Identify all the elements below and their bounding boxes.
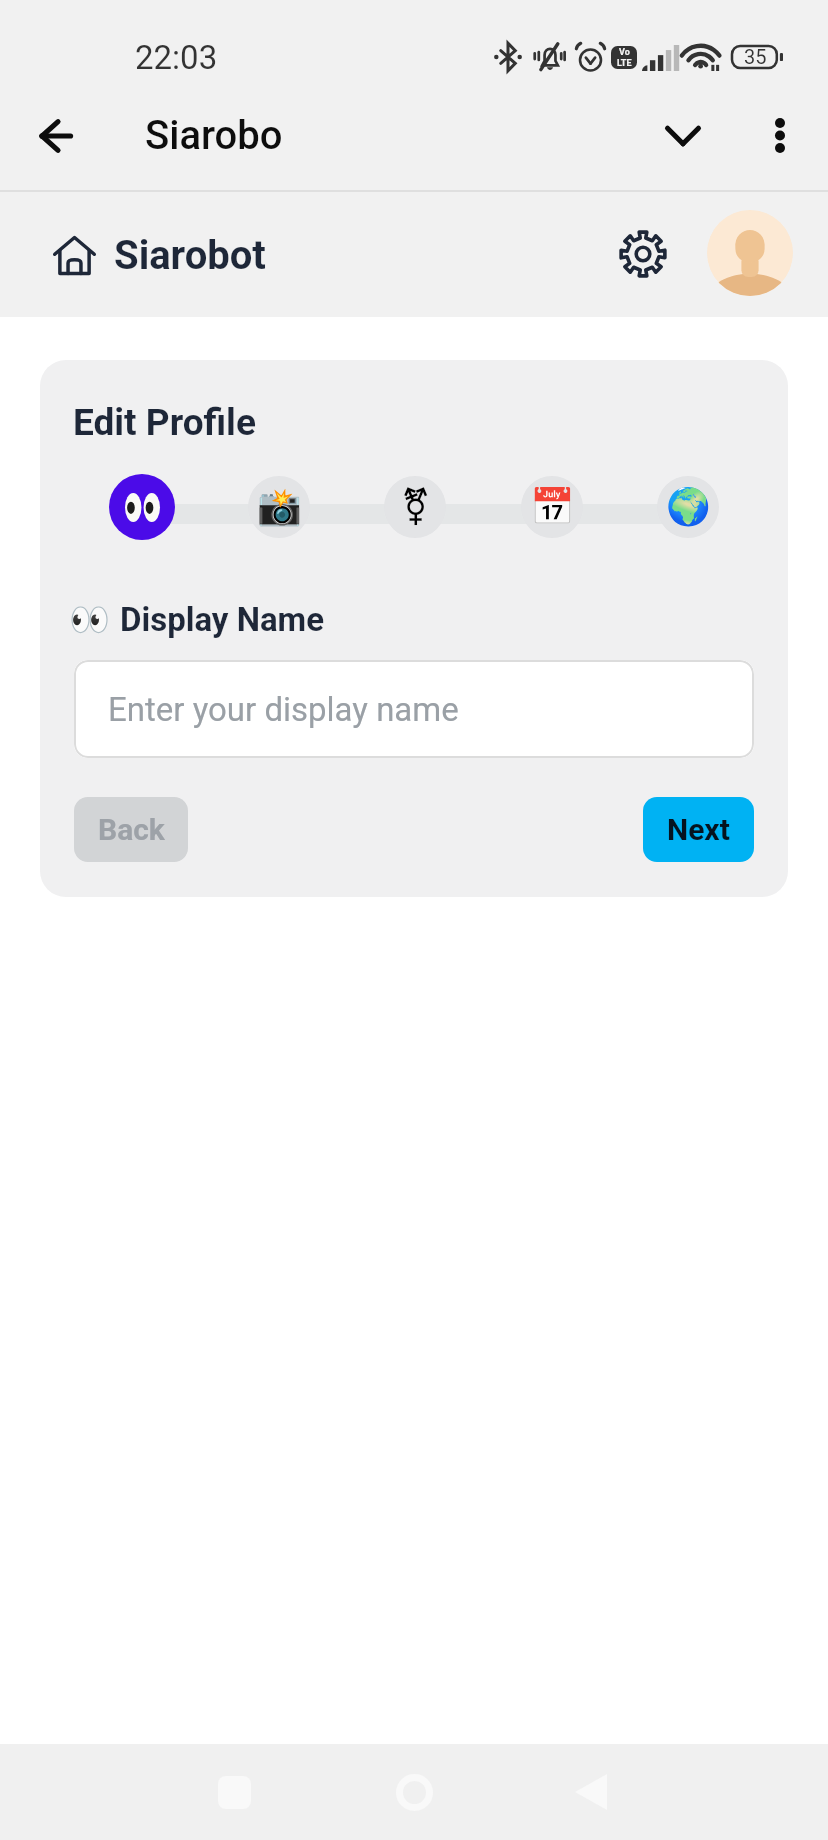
staticText: Vo xyxy=(619,47,630,58)
button[interactable]: Display name step xyxy=(109,474,175,540)
button[interactable]: Display name input xyxy=(74,660,754,758)
staticText: Back xyxy=(98,812,165,847)
button[interactable]: Settings xyxy=(605,216,681,292)
staticText: 📅 xyxy=(530,486,575,528)
staticText: 👀 xyxy=(69,600,111,639)
button[interactable]: Siarobot xyxy=(53,220,266,290)
button[interactable]: Birthday step xyxy=(521,476,583,538)
button[interactable]: Profile xyxy=(707,210,793,296)
staticText: Next xyxy=(667,812,730,847)
staticText: Display Name xyxy=(120,600,325,639)
button[interactable]: Gender step xyxy=(384,476,446,538)
button[interactable]: More options xyxy=(738,93,822,177)
button[interactable]: Photo step xyxy=(248,476,310,538)
button[interactable]: Recents xyxy=(194,1752,274,1832)
button[interactable]: Expand xyxy=(641,94,725,178)
staticText: 35 xyxy=(744,45,767,68)
button[interactable]: Back xyxy=(74,797,188,862)
staticText: Enter your display name xyxy=(108,690,459,729)
staticText: LTE xyxy=(617,58,632,69)
staticText: ⚧️ xyxy=(400,486,431,528)
button[interactable]: Next xyxy=(643,797,754,862)
staticText: 📸 xyxy=(257,486,302,528)
staticText: Siarobot xyxy=(114,232,266,279)
staticText: Siarobo xyxy=(145,112,283,159)
staticText: 22:03 xyxy=(135,38,218,77)
staticText: Edit Profile xyxy=(73,401,256,444)
staticText: 🌍 xyxy=(666,486,711,528)
button[interactable]: Location step xyxy=(657,476,719,538)
button[interactable]: Back xyxy=(14,94,98,178)
